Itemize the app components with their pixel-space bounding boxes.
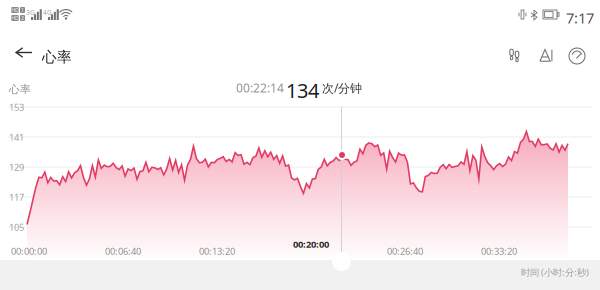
staticText: 2	[21, 14, 24, 22]
button[interactable]: Steps	[500, 39, 529, 71]
staticText: 134	[286, 77, 319, 104]
staticText: 00:20:00	[293, 238, 329, 250]
staticText: 141	[9, 131, 24, 143]
staticText: 1	[21, 6, 24, 14]
button[interactable]: Pace	[562, 40, 592, 72]
staticText: 3G	[26, 8, 35, 17]
button[interactable]: Altitude	[532, 40, 561, 71]
staticText: 00:22:14	[236, 80, 284, 96]
staticText: 00:00:00	[11, 245, 47, 257]
staticText: 129	[9, 161, 24, 173]
staticText: 117	[9, 191, 24, 203]
staticText: 00:26:40	[387, 245, 423, 257]
staticText: HD	[11, 6, 19, 14]
staticText: 00:33:20	[481, 245, 517, 257]
staticText: 153	[9, 101, 24, 113]
button[interactable]: Back	[7, 36, 41, 69]
staticText: 7:17	[566, 8, 594, 27]
staticText: 00:06:40	[105, 245, 141, 257]
staticText: 00:13:20	[199, 245, 235, 257]
staticText: 105	[9, 221, 24, 233]
staticText: 次/分钟	[322, 80, 362, 96]
staticText: 心率	[42, 48, 72, 66]
button[interactable]: 心率	[38, 40, 76, 74]
staticText: 时间 (小时:分:秒)	[521, 266, 589, 278]
staticText: 心率	[9, 83, 31, 96]
staticText: HD	[11, 14, 19, 22]
staticText: 4G	[43, 8, 52, 17]
